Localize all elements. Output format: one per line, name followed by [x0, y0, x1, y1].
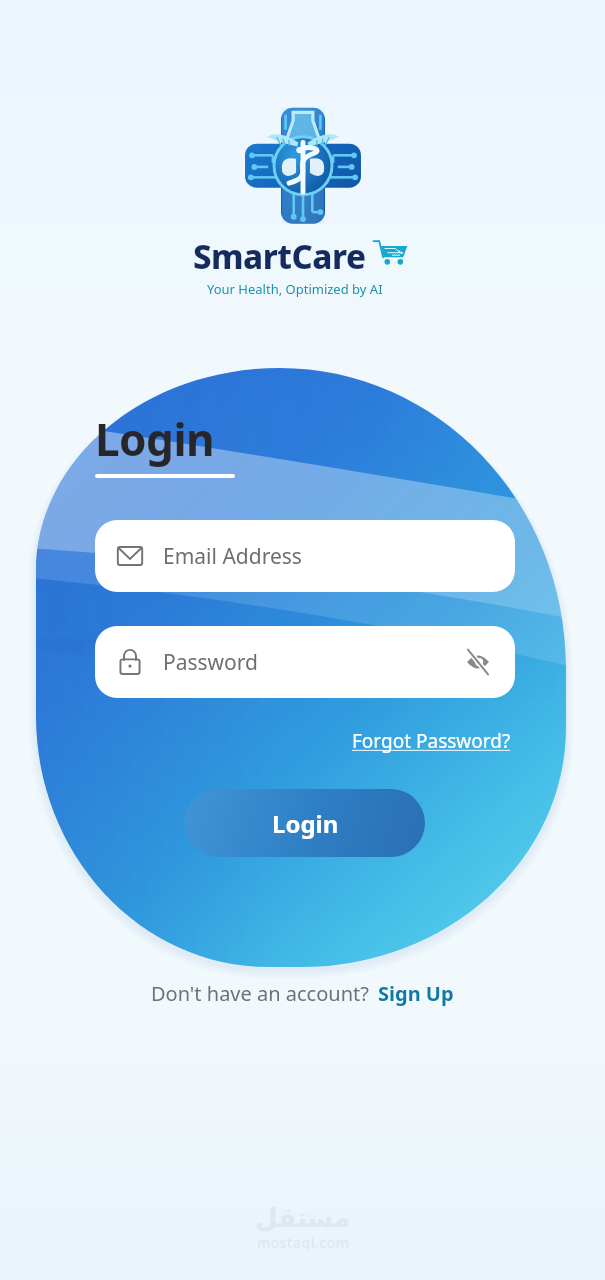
staticText: Email Address: [163, 542, 302, 571]
button[interactable]: Forgot Password?: [348, 724, 515, 758]
button[interactable]: Password: [95, 626, 515, 698]
staticText: Forgot Password?: [352, 728, 511, 754]
staticText: Don't have an account?: [151, 980, 369, 1007]
staticText: Login: [95, 409, 215, 469]
staticText: مستقل: [255, 1203, 351, 1233]
staticText: mostaql.com: [257, 1233, 350, 1252]
button[interactable]: Login: [185, 789, 425, 857]
button[interactable]: Email Address: [95, 520, 515, 592]
staticText: SmartCare: [193, 234, 366, 279]
staticText: Login: [272, 807, 339, 840]
button[interactable]: Sign Up: [378, 980, 454, 1007]
button[interactable]: Show password: [459, 643, 497, 681]
staticText: Your Health, Optimized by AI: [207, 280, 383, 298]
staticText: Password: [163, 648, 459, 677]
staticText: Sign Up: [378, 980, 454, 1007]
